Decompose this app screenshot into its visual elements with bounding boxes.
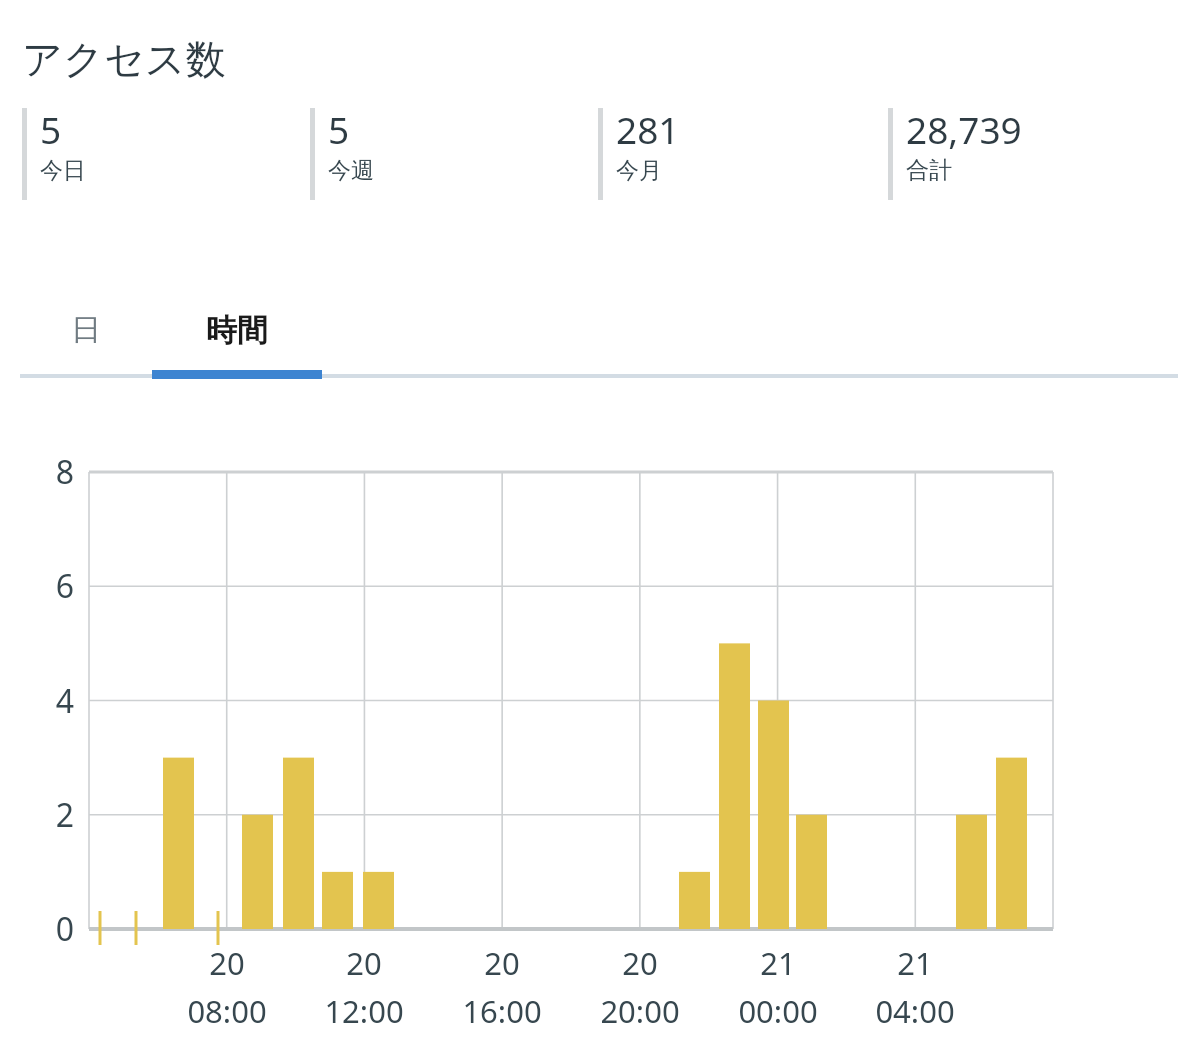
- staticText: 20: [346, 942, 382, 984]
- staticText: 281: [616, 104, 680, 154]
- staticText: 20:00: [600, 990, 680, 1032]
- button[interactable]: 28,739: [888, 108, 1158, 200]
- staticText: 今月: [616, 156, 662, 185]
- staticText: 今週: [328, 156, 374, 185]
- button[interactable]: 日: [20, 282, 152, 378]
- staticText: 今日: [40, 156, 86, 185]
- staticText: 5: [40, 104, 62, 154]
- staticText: 2: [55, 793, 74, 837]
- staticText: 0: [55, 907, 74, 951]
- staticText: 合計: [906, 156, 952, 185]
- staticText: 6: [55, 564, 74, 608]
- staticText: 20: [484, 942, 520, 984]
- staticText: 00:00: [738, 990, 818, 1032]
- button[interactable]: 281: [598, 108, 868, 200]
- staticText: 20: [622, 942, 658, 984]
- staticText: 20: [209, 942, 245, 984]
- staticText: 時間: [206, 311, 268, 350]
- staticText: 21: [760, 942, 796, 984]
- staticText: 12:00: [324, 990, 404, 1032]
- staticText: 16:00: [462, 990, 542, 1032]
- staticText: 21: [897, 942, 933, 984]
- button[interactable]: 5: [310, 108, 580, 200]
- staticText: 08:00: [187, 990, 267, 1032]
- button[interactable]: 5: [22, 108, 292, 200]
- button[interactable]: 時間: [152, 282, 322, 378]
- staticText: 8: [55, 450, 74, 494]
- staticText: 04:00: [875, 990, 955, 1032]
- staticText: 5: [328, 104, 350, 154]
- staticText: 4: [55, 679, 74, 723]
- staticText: 日: [71, 311, 101, 349]
- staticText: 28,739: [906, 104, 1022, 154]
- staticText: アクセス数: [22, 34, 226, 84]
